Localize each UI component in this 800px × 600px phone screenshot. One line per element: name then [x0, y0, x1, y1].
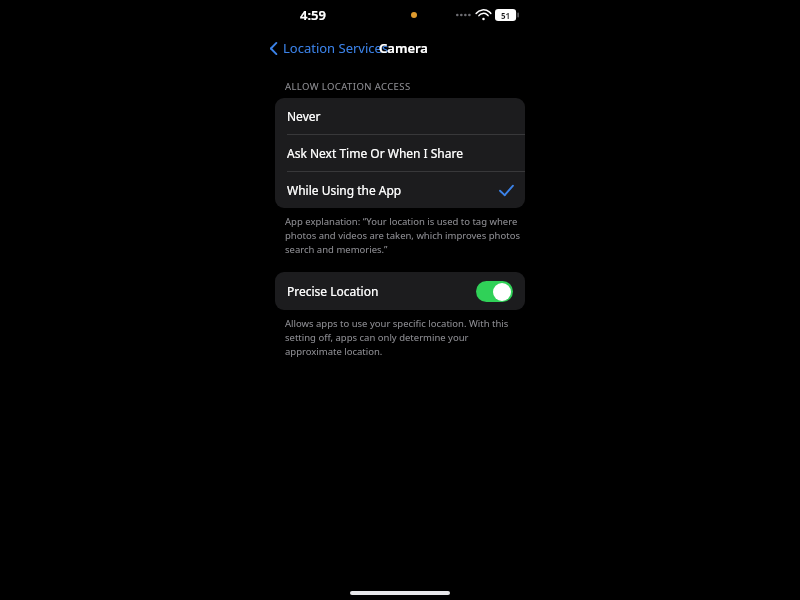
staticText: Never [287, 108, 321, 124]
button[interactable]: Precise Location toggle, on [476, 281, 513, 302]
button[interactable]: Precise Location [275, 272, 525, 310]
staticText: 51 [501, 10, 511, 21]
staticText: Precise Location [287, 283, 379, 299]
button[interactable]: While Using the App [275, 172, 525, 208]
staticText: ALLOW LOCATION ACCESS [285, 80, 411, 93]
staticText: App explanation: “Your location is used … [285, 215, 520, 256]
button[interactable]: Ask Next Time Or When I Share [275, 135, 525, 171]
staticText: Location Services [283, 39, 389, 57]
staticText: While Using the App [287, 182, 402, 198]
button[interactable]: Location Services [266, 37, 392, 59]
staticText: Camera [379, 39, 428, 57]
staticText: Ask Next Time Or When I Share [287, 145, 464, 161]
staticText: Allows apps to use your specific locatio… [285, 317, 520, 358]
staticText: 4:59 [300, 6, 326, 24]
button[interactable]: Never [275, 98, 525, 134]
